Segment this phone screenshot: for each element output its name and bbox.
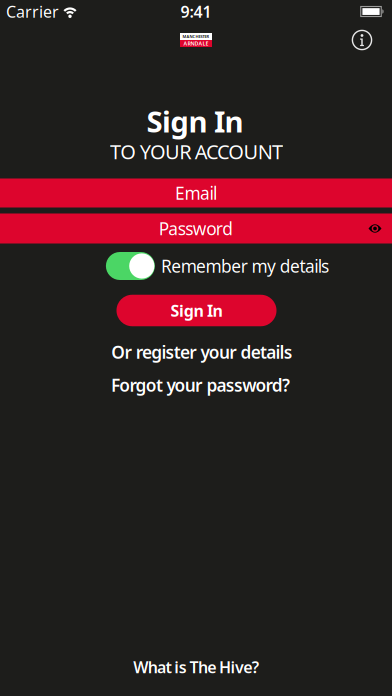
staticText: 9:41 [180,1,211,22]
staticText: Sign In [170,300,223,321]
staticText: What is The Hive? [133,656,259,678]
button[interactable]: Password [0,213,392,243]
staticText: Forgot your password? [111,373,290,396]
button[interactable]: Forgot your password? [111,373,290,396]
button[interactable]: Remember my details [106,252,329,280]
button[interactable]: Or register your details [111,340,293,363]
staticText: Sign In [147,101,243,140]
staticText: ARNDALE [183,40,208,47]
button[interactable]: Info [351,29,372,50]
button[interactable]: Email [0,178,392,207]
staticText: Remember my details [161,254,329,277]
staticText: Password [159,217,233,240]
button[interactable]: What is The Hive? [133,656,259,678]
staticText: MANCHESTER [182,34,209,39]
staticText: Carrier [6,1,59,22]
staticText: TO YOUR ACCOUNT [110,138,283,165]
button[interactable]: Sign In [116,295,276,326]
staticText: Or register your details [111,340,293,363]
staticText: Email [175,181,217,204]
